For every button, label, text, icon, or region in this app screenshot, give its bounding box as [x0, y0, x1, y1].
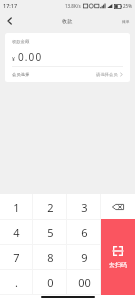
- button[interactable]: 0: [33, 270, 67, 295]
- button[interactable]: 会员选择: [5, 67, 130, 82]
- button[interactable]: 3: [67, 194, 101, 220]
- staticText: 会员选择: [12, 72, 30, 77]
- button[interactable]: 8: [33, 245, 67, 270]
- staticText: 13.8K/s: [65, 3, 81, 9]
- staticText: 请选择会员: [96, 72, 118, 77]
- staticText: .: [15, 275, 18, 290]
- button[interactable]: 1: [0, 194, 33, 220]
- staticText: ¥: [12, 56, 15, 63]
- button[interactable]: 2: [33, 194, 67, 220]
- staticText: 8: [47, 250, 54, 265]
- staticText: 5: [47, 225, 54, 240]
- staticText: 0.00: [18, 50, 43, 64]
- staticText: 去扫码: [109, 261, 127, 269]
- button[interactable]: 6: [67, 220, 101, 245]
- staticText: 7: [13, 250, 20, 265]
- button[interactable]: 4: [0, 220, 33, 245]
- button[interactable]: .: [0, 270, 33, 295]
- button[interactable]: 9: [67, 245, 101, 270]
- staticText: 账单: [122, 19, 130, 24]
- staticText: 收款金额: [12, 39, 30, 44]
- button[interactable]: 5: [33, 220, 67, 245]
- staticText: 3: [81, 200, 88, 215]
- button[interactable]: Backspace: [101, 194, 135, 219]
- button[interactable]: 7: [0, 245, 33, 270]
- staticText: 2: [47, 200, 54, 215]
- staticText: 00: [78, 275, 91, 290]
- button[interactable]: 去扫码: [101, 219, 135, 295]
- staticText: 17:17: [3, 2, 18, 9]
- staticText: 0: [47, 275, 54, 290]
- button[interactable]: 账单: [117, 11, 135, 31]
- staticText: 25%: [123, 3, 132, 9]
- button[interactable]: 00: [67, 270, 101, 295]
- button[interactable]: Back: [0, 11, 18, 31]
- staticText: 9: [81, 250, 88, 265]
- staticText: 6: [81, 225, 88, 240]
- staticText: 1: [13, 200, 20, 215]
- staticText: 收款: [62, 18, 73, 25]
- staticText: 4: [13, 225, 20, 240]
